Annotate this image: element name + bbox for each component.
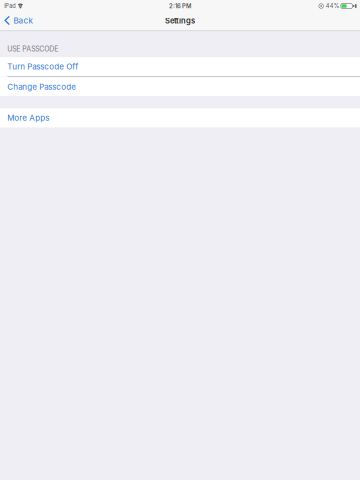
staticText: Back: [13, 16, 32, 25]
staticText: Turn Passcode Off: [7, 62, 78, 71]
staticText: Settings: [165, 16, 195, 25]
staticText: 2:16 PM: [169, 2, 191, 10]
staticText: iPad: [4, 3, 15, 9]
button[interactable]: Back: [0, 12, 37, 30]
button[interactable]: Turn Passcode Off: [0, 57, 360, 76]
staticText: 44%: [326, 3, 339, 9]
button[interactable]: More Apps: [0, 108, 360, 127]
staticText: USE PASSCODE: [7, 45, 58, 53]
staticText: Change Passcode: [7, 82, 76, 92]
button[interactable]: Change Passcode: [0, 77, 360, 96]
staticText: More Apps: [7, 113, 49, 123]
